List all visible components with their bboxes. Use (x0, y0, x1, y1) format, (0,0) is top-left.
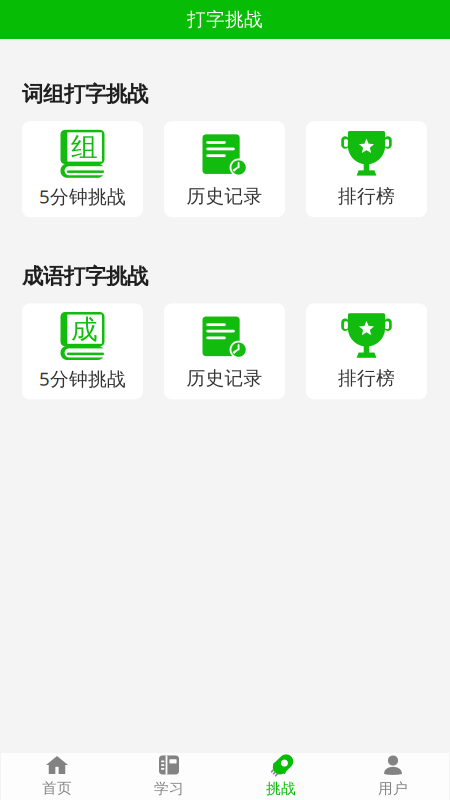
staticText: 5分钟挑战 (39, 366, 126, 391)
staticText: 成 (71, 313, 98, 346)
button[interactable]: 用户 (337, 753, 449, 800)
staticText: 5分钟挑战 (39, 184, 126, 209)
button[interactable]: 学习 (113, 753, 225, 800)
button[interactable]: 排行榜 (306, 121, 427, 217)
button[interactable]: 历史记录 (164, 121, 285, 217)
button[interactable]: 组 (22, 121, 143, 217)
staticText: 用户 (378, 779, 408, 797)
staticText: 首页 (42, 779, 72, 797)
button[interactable]: 首页 (1, 753, 113, 800)
button[interactable]: 排行榜 (306, 303, 427, 399)
staticText: 历史记录 (186, 185, 262, 208)
staticText: 排行榜 (338, 367, 395, 390)
button[interactable]: 挑战 (225, 753, 337, 800)
staticText: 打字挑战 (187, 8, 263, 31)
staticText: 排行榜 (338, 185, 395, 208)
staticText: 历史记录 (186, 367, 262, 390)
staticText: 成语打字挑战 (22, 263, 148, 289)
button[interactable]: 历史记录 (164, 303, 285, 399)
button[interactable]: 成 (22, 303, 143, 399)
staticText: 词组打字挑战 (22, 81, 148, 107)
staticText: 学习 (154, 779, 184, 797)
staticText: 组 (71, 131, 98, 164)
staticText: 挑战 (266, 779, 296, 797)
